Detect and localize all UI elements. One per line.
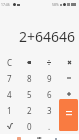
staticText: 17:46 [1, 2, 10, 7]
staticText: 1 [7, 105, 12, 116]
staticText: 58% [52, 2, 59, 7]
button[interactable]: Home [37, 137, 42, 140]
button[interactable]: Divide [39, 54, 59, 70]
button[interactable]: 1 [0, 102, 19, 118]
button[interactable]: 6 [39, 86, 59, 102]
button[interactable]: Equals [59, 99, 78, 131]
staticText: 4 [7, 89, 12, 100]
staticText: 2 [27, 105, 32, 116]
staticText: C [7, 57, 13, 68]
button[interactable]: Recent apps [17, 137, 21, 140]
button[interactable]: 7 [0, 70, 19, 86]
button[interactable] [59, 118, 79, 134]
other: Backspace [27, 61, 31, 64]
button[interactable]: 2 [19, 102, 39, 118]
button[interactable]: Backspace [19, 54, 39, 70]
button[interactable]: 5 [19, 86, 39, 102]
button[interactable]: Multiply [59, 54, 79, 70]
other: Divide [47, 60, 51, 65]
button[interactable]: Minus [59, 70, 79, 86]
staticText: 7 [7, 73, 12, 84]
staticText: . [48, 121, 51, 132]
staticText: 9 [47, 73, 52, 84]
other: Plus [67, 92, 71, 96]
button[interactable] [59, 102, 79, 118]
other: Minus [67, 76, 71, 80]
other: Multiply [68, 61, 71, 64]
button[interactable]: Square root [0, 118, 19, 134]
button[interactable]: 3 [39, 102, 59, 118]
staticText: 6 [47, 89, 52, 100]
other: Square root [7, 123, 13, 129]
button[interactable]: 9 [39, 70, 59, 86]
button[interactable]: . [39, 118, 59, 134]
staticText: 8 [27, 73, 32, 84]
button[interactable]: 8 [19, 70, 39, 86]
button[interactable]: 4 [0, 86, 19, 102]
button[interactable]: 0 [19, 118, 39, 134]
button[interactable]: Plus [59, 86, 79, 102]
staticText: 0 [27, 121, 32, 132]
staticText: 2+64646 [19, 27, 76, 46]
staticText: 3 [47, 105, 52, 116]
button[interactable]: C [0, 54, 19, 70]
staticText: 5 [27, 89, 32, 100]
